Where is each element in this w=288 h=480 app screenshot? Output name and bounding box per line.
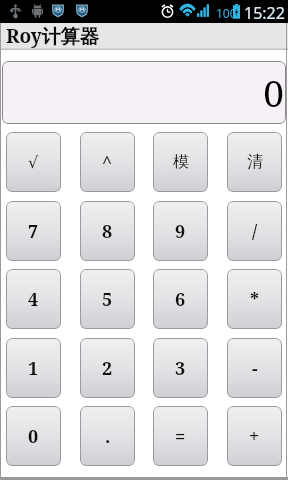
staticText: √	[28, 153, 39, 172]
staticText: 7	[28, 219, 39, 244]
button[interactable]: *	[227, 269, 282, 329]
staticText: ^	[102, 150, 113, 175]
staticText: 9	[175, 219, 186, 244]
button[interactable]: 清	[227, 132, 282, 192]
staticText: 5	[102, 287, 113, 312]
staticText: 0	[28, 424, 39, 449]
button[interactable]: 4	[6, 269, 61, 329]
staticText: +	[249, 424, 260, 449]
button[interactable]: √	[6, 132, 61, 192]
staticText: 清	[247, 152, 263, 172]
button[interactable]: /	[227, 201, 282, 261]
staticText: 15:22	[244, 2, 285, 24]
button[interactable]: +	[227, 406, 282, 466]
staticText: 0	[2, 67, 284, 117]
button[interactable]: 7	[6, 201, 61, 261]
button[interactable]: 0	[2, 61, 286, 124]
staticText: 100	[216, 5, 237, 21]
button[interactable]: 8	[80, 201, 135, 261]
button[interactable]: 2	[80, 338, 135, 398]
button[interactable]: ^	[80, 132, 135, 192]
button[interactable]: 模	[153, 132, 208, 192]
staticText: =	[175, 424, 186, 449]
staticText: 4	[28, 287, 39, 312]
button[interactable]: 5	[80, 269, 135, 329]
staticText: 3	[175, 356, 186, 381]
button[interactable]: 9	[153, 201, 208, 261]
staticText: 2	[102, 356, 113, 381]
button[interactable]: 6	[153, 269, 208, 329]
staticText: /	[252, 219, 258, 244]
button[interactable]: =	[153, 406, 208, 466]
button[interactable]: 1	[6, 338, 61, 398]
staticText: 8	[102, 219, 113, 244]
staticText: 1	[28, 356, 39, 381]
button[interactable]: -	[227, 338, 282, 398]
staticText: -	[252, 356, 258, 381]
button[interactable]: 0	[6, 406, 61, 466]
staticText: Roy计算器	[6, 23, 99, 49]
staticText: 模	[173, 152, 189, 172]
button[interactable]: .	[80, 406, 135, 466]
staticText: 6	[175, 287, 186, 312]
staticText: *	[250, 287, 260, 312]
button[interactable]: 3	[153, 338, 208, 398]
staticText: .	[105, 424, 111, 449]
